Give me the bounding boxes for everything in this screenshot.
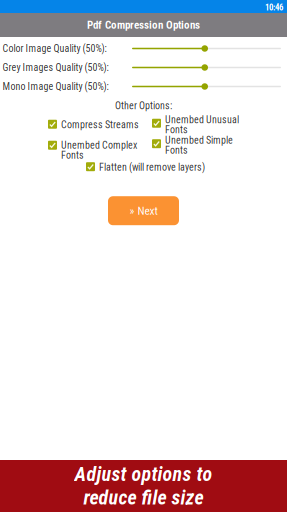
staticText: Flatten (will remove layers) [99,161,205,173]
button[interactable]: Unembed Unusual [152,115,248,135]
staticText: Mono Image Quality (50%): [2,81,108,92]
staticText: Fonts [165,144,188,156]
staticText: Other Options: [115,100,172,112]
button[interactable]: » Next [108,196,179,225]
button[interactable]: Compress Streams [48,120,152,130]
staticText: reduce file size [83,486,203,509]
staticText: Fonts [165,124,188,136]
staticText: Color Image Quality (50%): [2,43,106,54]
staticText: 10:46 [265,2,283,13]
staticText: Unembed Simple [165,134,233,146]
staticText: Grey Images Quality (50%): [2,62,108,73]
staticText: Adjust options to [74,463,212,486]
staticText: Unembed Complex [61,139,137,151]
button[interactable]: Unembed Complex [48,140,152,160]
button[interactable]: Flatten (will remove layers) [86,162,216,172]
button[interactable]: Unembed Simple [152,135,248,155]
staticText: Unembed Unusual [165,114,239,126]
staticText: Compress Streams [61,119,139,131]
staticText: Pdf Compression Options [87,18,200,31]
staticText: Fonts [61,149,84,161]
staticText: » Next [129,204,157,217]
